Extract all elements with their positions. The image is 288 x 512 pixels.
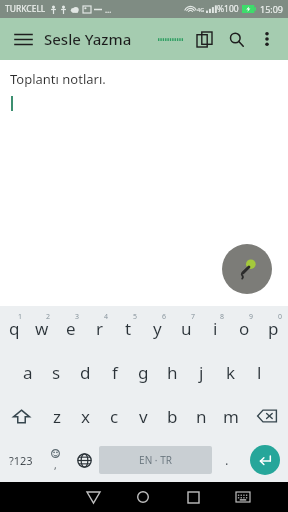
staticText: o [239,317,250,340]
button[interactable]: y [143,306,172,350]
staticText: s [52,361,61,384]
staticText: x [81,405,90,428]
button[interactable]: m [216,394,245,438]
button[interactable]: p [259,306,288,350]
staticText: 9 [249,312,254,322]
staticText: a [23,361,33,384]
staticText: q [9,317,20,340]
staticText: 4 [104,312,109,322]
staticText: 4G [197,6,205,13]
button[interactable]: Search [220,23,252,55]
staticText: 3 [75,312,80,322]
button[interactable]: ?123 [0,438,42,482]
button[interactable]: t [114,306,143,350]
staticText: 2 [46,312,51,322]
button[interactable]: Change language [69,438,99,482]
staticText: t [125,317,132,340]
staticText: w [35,317,49,340]
button[interactable]: v [129,394,158,438]
button[interactable]: n [187,394,216,438]
button[interactable]: l [245,350,274,394]
staticText: e [66,317,76,340]
staticText: 15:09 [260,3,284,15]
staticText: %100 [217,3,239,15]
button[interactable]: Record voice [222,244,272,294]
staticText: . [225,451,229,469]
staticText: , [54,458,57,472]
button[interactable]: More options [252,24,282,54]
button[interactable]: Copy [188,23,220,55]
staticText: TURKCELL [5,3,46,15]
staticText: n [196,405,207,428]
staticText: … [105,4,112,15]
staticText: 0 [278,312,283,322]
staticText: b [167,405,178,428]
staticText: m [223,405,239,428]
staticText: g [138,361,149,384]
button[interactable]: d [71,350,100,394]
button[interactable]: x [71,394,100,438]
staticText: d [80,361,91,384]
staticText: k [226,361,236,384]
staticText: p [268,317,279,340]
button[interactable]: i [201,306,230,350]
staticText: v [139,405,148,428]
staticText: 8 [220,312,225,322]
button[interactable]: o [230,306,259,350]
staticText: i [213,317,218,340]
button[interactable]: r [85,306,114,350]
button[interactable]: Backspace [245,394,288,438]
staticText: ?123 [9,453,33,468]
staticText: h [167,361,178,384]
staticText: r [96,317,104,340]
button[interactable]: c [100,394,129,438]
button[interactable]: a [13,350,42,394]
button[interactable]: Enter [250,445,280,475]
button[interactable]: s [42,350,71,394]
staticText: 7 [191,312,196,322]
staticText: l [257,361,262,384]
button[interactable]: q [0,306,28,350]
button[interactable]: h [158,350,187,394]
button[interactable]: w [28,306,56,350]
staticText: EN · TR [139,453,172,467]
staticText: j [199,361,204,384]
button[interactable]: f [100,350,129,394]
staticText: Toplantı notları. [10,70,106,88]
button[interactable]: k [216,350,245,394]
staticText: 6 [162,312,167,322]
button[interactable]: e [56,306,85,350]
button[interactable]: Emoji and comma [42,438,69,482]
button[interactable]: u [172,306,201,350]
staticText: c [110,405,119,428]
button[interactable]: Home [118,482,168,512]
staticText: z [53,405,61,428]
button[interactable]: Menu [6,22,40,56]
staticText: y [153,317,162,340]
button[interactable]: Hide keyboard [218,482,268,512]
button[interactable]: Shift [0,394,42,438]
button[interactable]: g [129,350,158,394]
staticText: 1 [18,312,23,322]
staticText: Sesle Yazma [44,29,132,49]
button[interactable]: Recent apps [168,482,218,512]
staticText: u [181,317,192,340]
staticText: f [112,361,118,384]
button[interactable]: j [187,350,216,394]
button[interactable]: b [158,394,187,438]
button[interactable]: Back [69,482,118,512]
staticText: 5 [133,312,138,322]
button[interactable]: EN · TR [99,446,212,474]
button[interactable]: . [212,438,242,482]
button[interactable]: z [42,394,71,438]
